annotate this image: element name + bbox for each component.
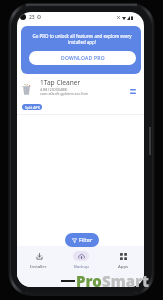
staticText: Smart — [102, 271, 149, 291]
staticText: Installer — [30, 263, 47, 269]
staticText: 1Tap Cleaner — [40, 78, 81, 87]
button[interactable]: 1Tap Cleaner — [17, 76, 144, 122]
staticText: Go PRO to unlock all features and explor… — [31, 33, 133, 45]
staticText: Backup — [74, 263, 89, 269]
staticText: DOWNLOAD PRO — [61, 55, 105, 62]
button[interactable]: Go PRO to unlock all features and explor… — [21, 26, 141, 74]
staticText: 23 — [29, 14, 35, 20]
button[interactable]: Filter — [65, 233, 99, 247]
staticText: Pro — [76, 271, 102, 291]
button[interactable]: Split APK — [22, 104, 42, 110]
button[interactable]: Apps — [102, 250, 144, 278]
button[interactable]: Backup — [60, 250, 102, 278]
button[interactable]: DOWNLOAD PRO — [29, 51, 136, 65]
staticText: Apps — [118, 263, 129, 269]
staticText: 4.88 (23000488) — [40, 87, 68, 92]
staticText: Split APK — [25, 105, 40, 110]
staticText: com.a0soft.gphone.acc.free — [40, 91, 89, 96]
staticText: Filter — [79, 236, 93, 244]
button[interactable]: Options — [126, 84, 140, 98]
button[interactable]: Installer — [17, 250, 60, 278]
